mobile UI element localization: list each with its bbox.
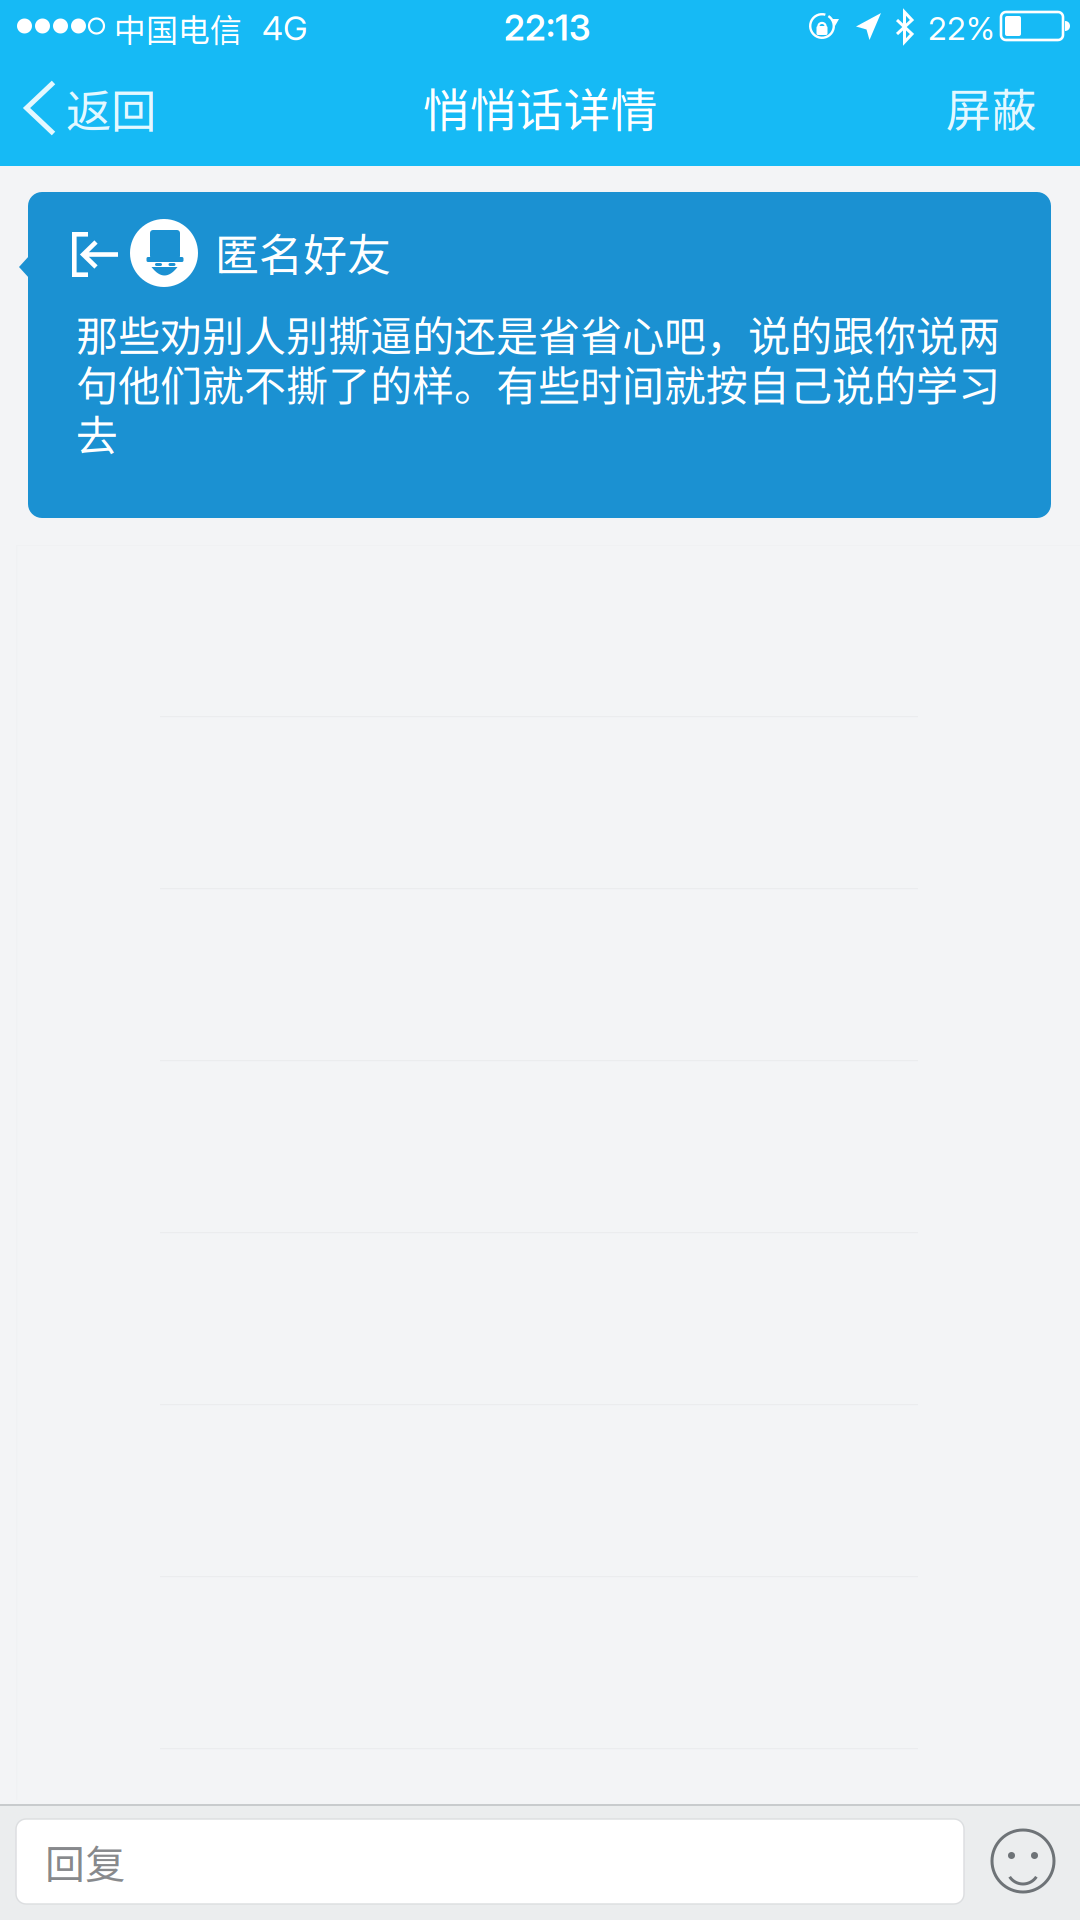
staticText: 回复 xyxy=(45,1832,125,1890)
staticText: 22:13 xyxy=(504,7,591,49)
staticText: 22% xyxy=(928,9,995,48)
button[interactable]: Emoji xyxy=(980,1818,1066,1904)
staticText: 悄悄话详情 xyxy=(422,73,657,141)
staticText: 4G xyxy=(262,8,308,48)
staticText: 中国电信 xyxy=(114,5,242,51)
staticText: 返回 xyxy=(66,75,156,141)
staticText: 匿名好友 xyxy=(215,220,391,284)
staticText: 屏蔽 xyxy=(946,74,1036,140)
button[interactable]: 屏蔽 xyxy=(946,52,1080,162)
button[interactable]: 返回 xyxy=(24,53,200,163)
button[interactable]: 回复 xyxy=(16,1819,964,1904)
staticText: 那些劝别人别撕逼的还是省省心吧，说的跟你说两句他们就不撕了的样。有些时间就按自己… xyxy=(76,303,1000,463)
